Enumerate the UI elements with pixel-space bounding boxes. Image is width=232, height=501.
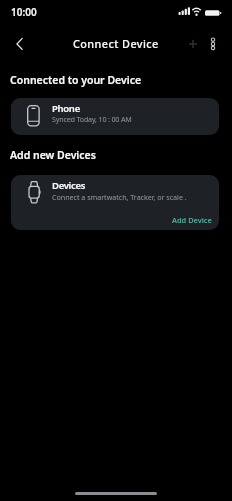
button[interactable]: Phone [11, 98, 219, 135]
staticText: Add Device [172, 215, 212, 225]
staticText: 10:00 [11, 5, 37, 19]
staticText: Connect Device [73, 36, 159, 51]
staticText: Phone [52, 102, 80, 115]
button[interactable]: Add Device [172, 215, 219, 230]
staticText: Connected to your Device [10, 73, 142, 87]
staticText: Devices [52, 179, 86, 192]
staticText: Add new Devices [10, 148, 96, 162]
staticText: Connect a smartwatch, Tracker, or scale … [52, 192, 187, 202]
staticText: Synced Today, 10 : 00 AM [52, 114, 132, 124]
button[interactable] [8, 33, 30, 55]
button[interactable] [205, 36, 221, 52]
button[interactable]: Devices [11, 175, 219, 230]
button[interactable] [185, 36, 201, 52]
